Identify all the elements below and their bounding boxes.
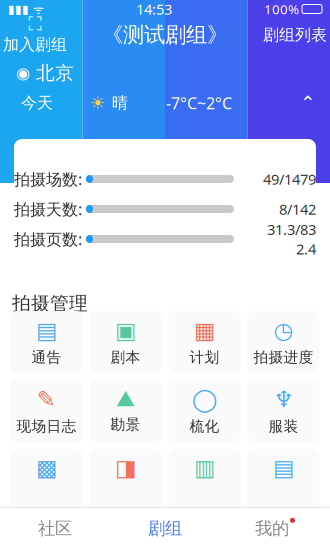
staticText: 拍摄页数: (14, 228, 82, 250)
staticText: 通告 (31, 348, 61, 366)
button[interactable]: ▣ (89, 311, 161, 373)
staticText: 剧组 (148, 518, 182, 539)
button[interactable]: 剧组列表 (260, 18, 330, 52)
staticText: 今天 (21, 93, 53, 113)
staticText: ▩ (36, 455, 57, 481)
staticText: ▣ (115, 318, 136, 343)
staticText: 北京 (36, 61, 74, 84)
staticText: 剧本 (110, 348, 140, 366)
staticText: ▥ (194, 455, 215, 481)
staticText: -7°C~2°C (166, 92, 232, 114)
staticText: ⛶ (28, 16, 41, 34)
button[interactable]: 剧组 (110, 507, 220, 550)
staticText: ◯ (192, 387, 217, 412)
staticText: 剧组列表 (263, 25, 327, 45)
staticText: ▤ (273, 455, 294, 481)
staticText: ▦ (194, 318, 215, 343)
staticText: 我的 (255, 518, 289, 539)
button[interactable]: ⛰ (89, 380, 161, 442)
staticText: ♆ (273, 387, 293, 412)
button[interactable]: ◨ (89, 449, 161, 511)
staticText: ◨ (115, 455, 136, 481)
staticText: ▮▮▮ ᯤ (8, 1, 44, 17)
staticText: 49/1479 (263, 169, 316, 189)
button[interactable]: ✎ (10, 380, 82, 442)
button[interactable]: 今天 (0, 88, 330, 118)
staticText: 社区 (38, 518, 72, 539)
button[interactable]: 我的 (220, 507, 330, 550)
button[interactable]: ◯ (168, 380, 240, 442)
staticText: 现场日志 (16, 417, 76, 435)
staticText: 拍摄进度 (253, 348, 313, 366)
button[interactable]: ♆ (247, 380, 319, 442)
staticText: ⌃ (300, 92, 316, 114)
staticText: 勘景 (110, 415, 140, 433)
staticText: 拍摄场数: (14, 168, 82, 190)
button[interactable]: ▩ (10, 449, 82, 511)
staticText: ☀ (90, 93, 106, 113)
button[interactable]: 社区 (0, 507, 110, 550)
staticText: ▤ (36, 318, 57, 343)
staticText: 晴 (112, 93, 128, 113)
button[interactable]: ▦ (168, 311, 240, 373)
staticText: 2.4 (296, 239, 316, 258)
button[interactable]: ⛶ (0, 18, 70, 52)
staticText: ◷ (273, 318, 293, 343)
button[interactable]: ▤ (247, 449, 319, 511)
button[interactable]: ▥ (168, 449, 240, 511)
staticText: 31.3/83 (267, 219, 316, 239)
staticText: 服装 (268, 417, 298, 435)
staticText: 拍摄天数: (14, 198, 82, 220)
staticText: 《测试剧组》 (102, 22, 228, 48)
staticText: 加入剧组 (3, 35, 67, 54)
staticText: 拍摄管理 (12, 292, 88, 315)
staticText: ◉ (16, 64, 30, 82)
staticText: 计划 (189, 348, 219, 366)
staticText: 8/142 (279, 199, 316, 219)
staticText: 梳化 (189, 417, 219, 435)
staticText: ✎ (37, 387, 56, 412)
staticText: 100% (264, 0, 299, 18)
button[interactable]: ◷ (247, 311, 319, 373)
staticText: ⛰ (116, 388, 135, 410)
staticText: 14:53 (136, 0, 172, 19)
button[interactable]: ▤ (10, 311, 82, 373)
